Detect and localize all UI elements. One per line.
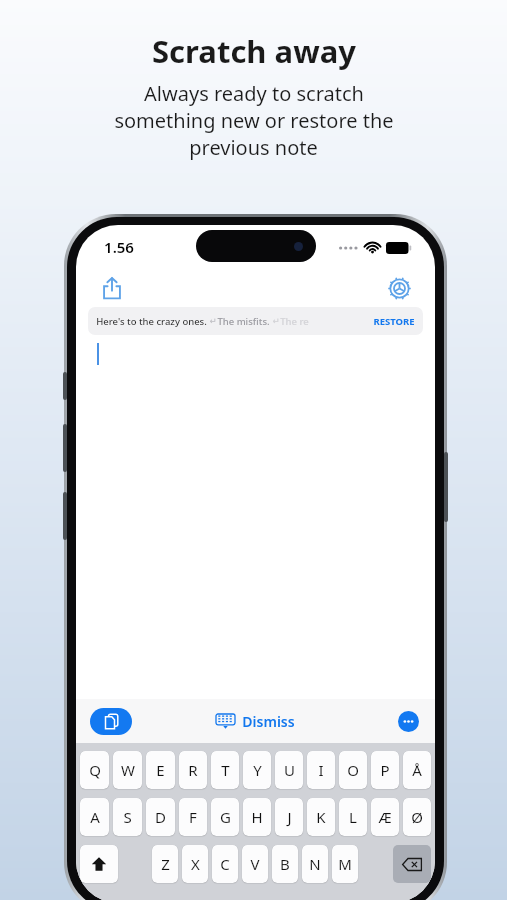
staticText: U xyxy=(284,760,295,780)
staticText: Dismiss xyxy=(242,712,295,731)
staticText: Here's to the crazy ones. xyxy=(96,315,207,328)
staticText: Ø xyxy=(411,807,423,827)
button[interactable]: D xyxy=(146,798,175,836)
staticText: The misfits. xyxy=(217,315,270,328)
staticText: Z xyxy=(161,854,170,874)
button[interactable]: Share xyxy=(94,270,130,306)
button[interactable]: Y xyxy=(243,751,271,789)
staticText: S xyxy=(123,807,132,827)
staticText: Scratch away xyxy=(152,30,356,72)
button[interactable]: Q xyxy=(80,751,109,789)
button[interactable]: O xyxy=(339,751,367,789)
button[interactable]: A xyxy=(80,798,109,836)
button[interactable]: K xyxy=(307,798,335,836)
button[interactable]: C xyxy=(212,845,238,883)
staticText: G xyxy=(220,807,231,827)
staticText: D xyxy=(155,807,166,827)
staticText: N xyxy=(309,854,321,874)
staticText: 1.56 xyxy=(104,237,134,257)
button[interactable]: W xyxy=(113,751,142,789)
button[interactable]: New note xyxy=(90,708,132,735)
staticText: F xyxy=(189,807,197,827)
button[interactable]: U xyxy=(275,751,303,789)
button[interactable]: M xyxy=(332,845,358,883)
staticText: Always ready to scratch xyxy=(144,80,364,107)
staticText: O xyxy=(347,760,359,780)
button[interactable]: Dismiss xyxy=(216,712,295,731)
staticText: A xyxy=(90,807,100,827)
button[interactable]: G xyxy=(211,798,239,836)
staticText: The re xyxy=(280,315,309,328)
staticText: ↵ xyxy=(270,315,280,327)
button[interactable]: F xyxy=(179,798,207,836)
staticText: M xyxy=(338,854,352,874)
button[interactable]: B xyxy=(272,845,298,883)
staticText: Y xyxy=(253,760,262,780)
staticText: something new or restore the xyxy=(114,107,394,134)
staticText: B xyxy=(280,854,290,874)
staticText: E xyxy=(156,760,165,780)
staticText: X xyxy=(191,854,200,874)
staticText: W xyxy=(121,760,135,780)
staticText: P xyxy=(380,760,390,780)
button[interactable]: Æ xyxy=(371,798,399,836)
button[interactable]: I xyxy=(307,751,335,789)
staticText: K xyxy=(316,807,326,827)
button[interactable]: More options xyxy=(398,711,419,732)
staticText: R xyxy=(188,760,198,780)
button[interactable]: Ø xyxy=(403,798,431,836)
button[interactable]: P xyxy=(371,751,399,789)
staticText: V xyxy=(250,854,260,874)
staticText: Q xyxy=(89,760,101,780)
staticText: I xyxy=(318,760,324,780)
button[interactable]: N xyxy=(302,845,328,883)
staticText: previous note xyxy=(189,134,318,161)
button[interactable]: RESTORE xyxy=(373,315,415,328)
staticText: J xyxy=(287,807,292,827)
button[interactable]: Settings xyxy=(381,270,417,306)
button[interactable]: L xyxy=(339,798,367,836)
button[interactable]: V xyxy=(242,845,268,883)
button[interactable]: S xyxy=(113,798,142,836)
button[interactable]: Backspace xyxy=(393,845,431,883)
button[interactable]: E xyxy=(146,751,175,789)
button[interactable]: H xyxy=(243,798,271,836)
staticText: T xyxy=(221,760,230,780)
button[interactable]: Shift xyxy=(80,845,118,883)
staticText: C xyxy=(220,854,230,874)
button[interactable]: Å xyxy=(403,751,431,789)
staticText: H xyxy=(251,807,263,827)
staticText: L xyxy=(349,807,357,827)
button[interactable]: J xyxy=(275,798,303,836)
button[interactable]: Here's to the crazy ones. xyxy=(88,307,423,335)
button[interactable]: X xyxy=(182,845,208,883)
staticText: RESTORE xyxy=(373,315,415,328)
staticText: Å xyxy=(412,760,422,780)
button[interactable]: Z xyxy=(152,845,178,883)
button[interactable]: T xyxy=(211,751,239,789)
staticText: ↵ xyxy=(207,315,217,327)
button[interactable]: R xyxy=(179,751,207,789)
staticText: Æ xyxy=(378,807,392,827)
